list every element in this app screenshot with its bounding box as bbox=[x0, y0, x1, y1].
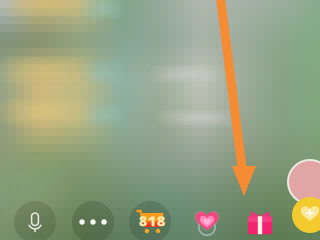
button[interactable]: Like bbox=[180, 198, 234, 240]
button[interactable]: Shop bbox=[123, 199, 177, 240]
button[interactable]: More bbox=[66, 199, 120, 240]
button[interactable]: Microphone bbox=[8, 199, 62, 240]
button[interactable]: Follow host bbox=[283, 158, 320, 238]
button[interactable]: Send gift bbox=[233, 199, 287, 240]
staticText: 818 bbox=[139, 211, 166, 230]
